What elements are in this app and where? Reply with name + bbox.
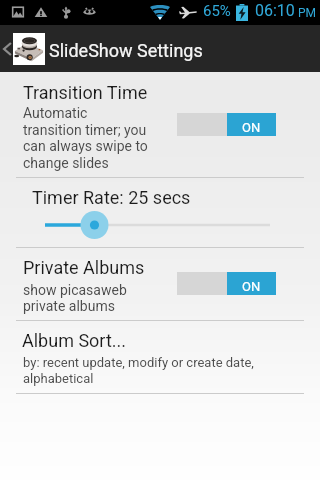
- button[interactable]: Timer rate slider: [0, 178, 320, 247]
- staticText: by: recent update, modify or create date…: [23, 355, 254, 370]
- button[interactable]: Navigate up: [0, 25, 48, 72]
- staticText: alphabetical: [23, 371, 94, 386]
- staticText: can always swipe to: [23, 138, 148, 154]
- staticText: transition timer; you: [23, 122, 147, 138]
- staticText: Album Sort...: [22, 330, 127, 351]
- button[interactable]: Toggle setting on or off: [177, 272, 276, 295]
- staticText: Timer Rate: 25 secs: [32, 187, 191, 208]
- staticText: Private Albums: [23, 257, 145, 278]
- button[interactable]: [0, 248, 320, 320]
- staticText: 06:10: [255, 1, 295, 20]
- staticText: private albums: [23, 298, 115, 314]
- staticText: ON: [242, 279, 261, 294]
- button[interactable]: Toggle setting on or off: [177, 113, 276, 136]
- button[interactable]: [0, 321, 320, 393]
- staticText: change slides: [23, 155, 109, 171]
- button[interactable]: [0, 74, 320, 177]
- staticText: PM: [298, 6, 317, 20]
- staticText: SlideShow Settings: [49, 40, 203, 61]
- staticText: ON: [242, 120, 261, 135]
- staticText: 65%: [203, 2, 231, 20]
- staticText: Transition Time: [23, 82, 151, 103]
- staticText: show picasaweb: [23, 282, 127, 298]
- staticText: Automatic: [23, 105, 88, 121]
